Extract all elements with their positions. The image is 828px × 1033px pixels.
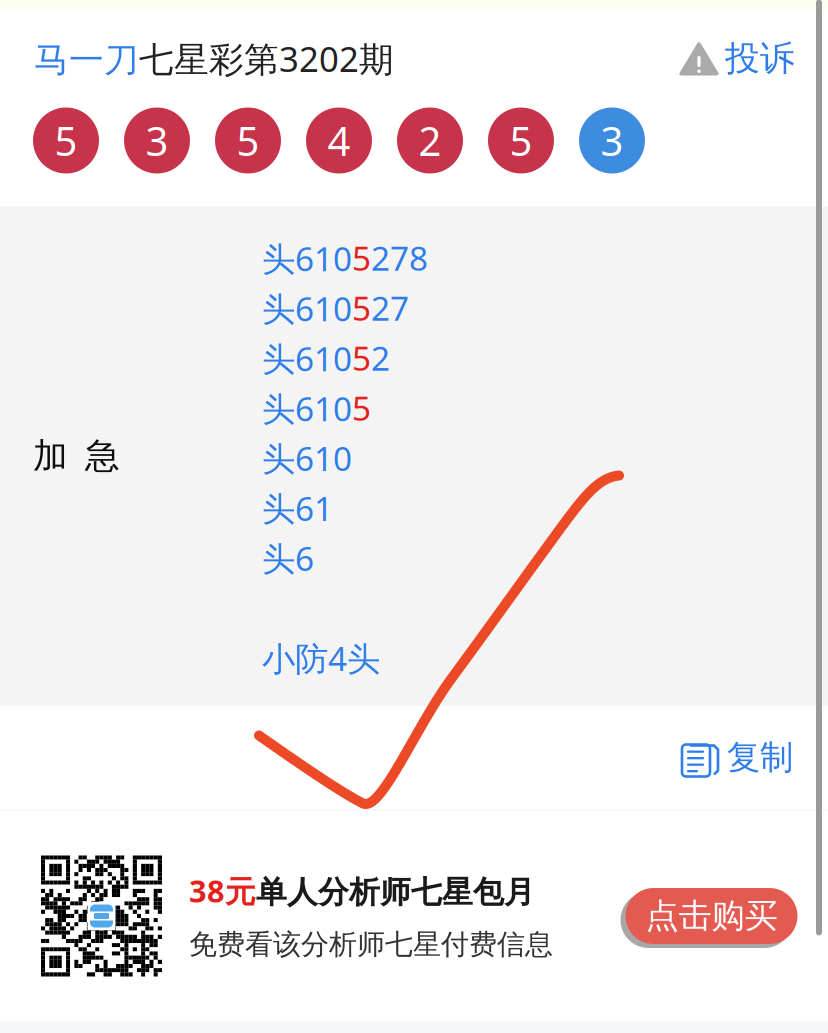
staticText: 头61 [262,486,333,530]
staticText: 5 [352,336,371,380]
staticText: 3 [145,114,168,167]
staticText: 5 [236,114,259,167]
button[interactable]: 投诉 [677,29,795,88]
staticText: 5 [54,114,77,167]
staticText: 5 [352,236,371,280]
staticText: 2 [371,336,390,380]
staticText: 免费看该分析师七星付费信息 [189,927,553,962]
button[interactable]: 复制 [681,725,793,790]
staticText: 马一刀 [34,39,139,81]
staticText: 头610 [262,336,352,380]
staticText: 2 [418,114,441,167]
staticText: 头610 [262,286,352,330]
staticText: 38元 [189,870,256,911]
staticText: 头610 [262,436,352,480]
staticText: 加 急 [33,435,120,477]
staticText: 头610 [262,236,352,280]
staticText: 投诉 [725,37,795,80]
staticText: 复制 [727,737,793,778]
staticText: 小防4头 [262,636,380,680]
staticText: 七星彩第3202期 [139,35,394,81]
staticText: 头610 [262,386,352,430]
staticText: 27 [371,286,409,330]
staticText: 278 [371,236,428,280]
staticText: 单人分析师七星包月 [256,874,535,911]
staticText: 头6 [262,536,314,580]
button[interactable]: 点击购买 [618,886,795,946]
staticText: 4 [327,114,350,167]
staticText: 5 [352,386,371,430]
staticText: 3 [600,114,623,167]
staticText: 5 [352,286,371,330]
staticText: 点击购买 [645,895,777,936]
staticText: 5 [509,114,532,167]
